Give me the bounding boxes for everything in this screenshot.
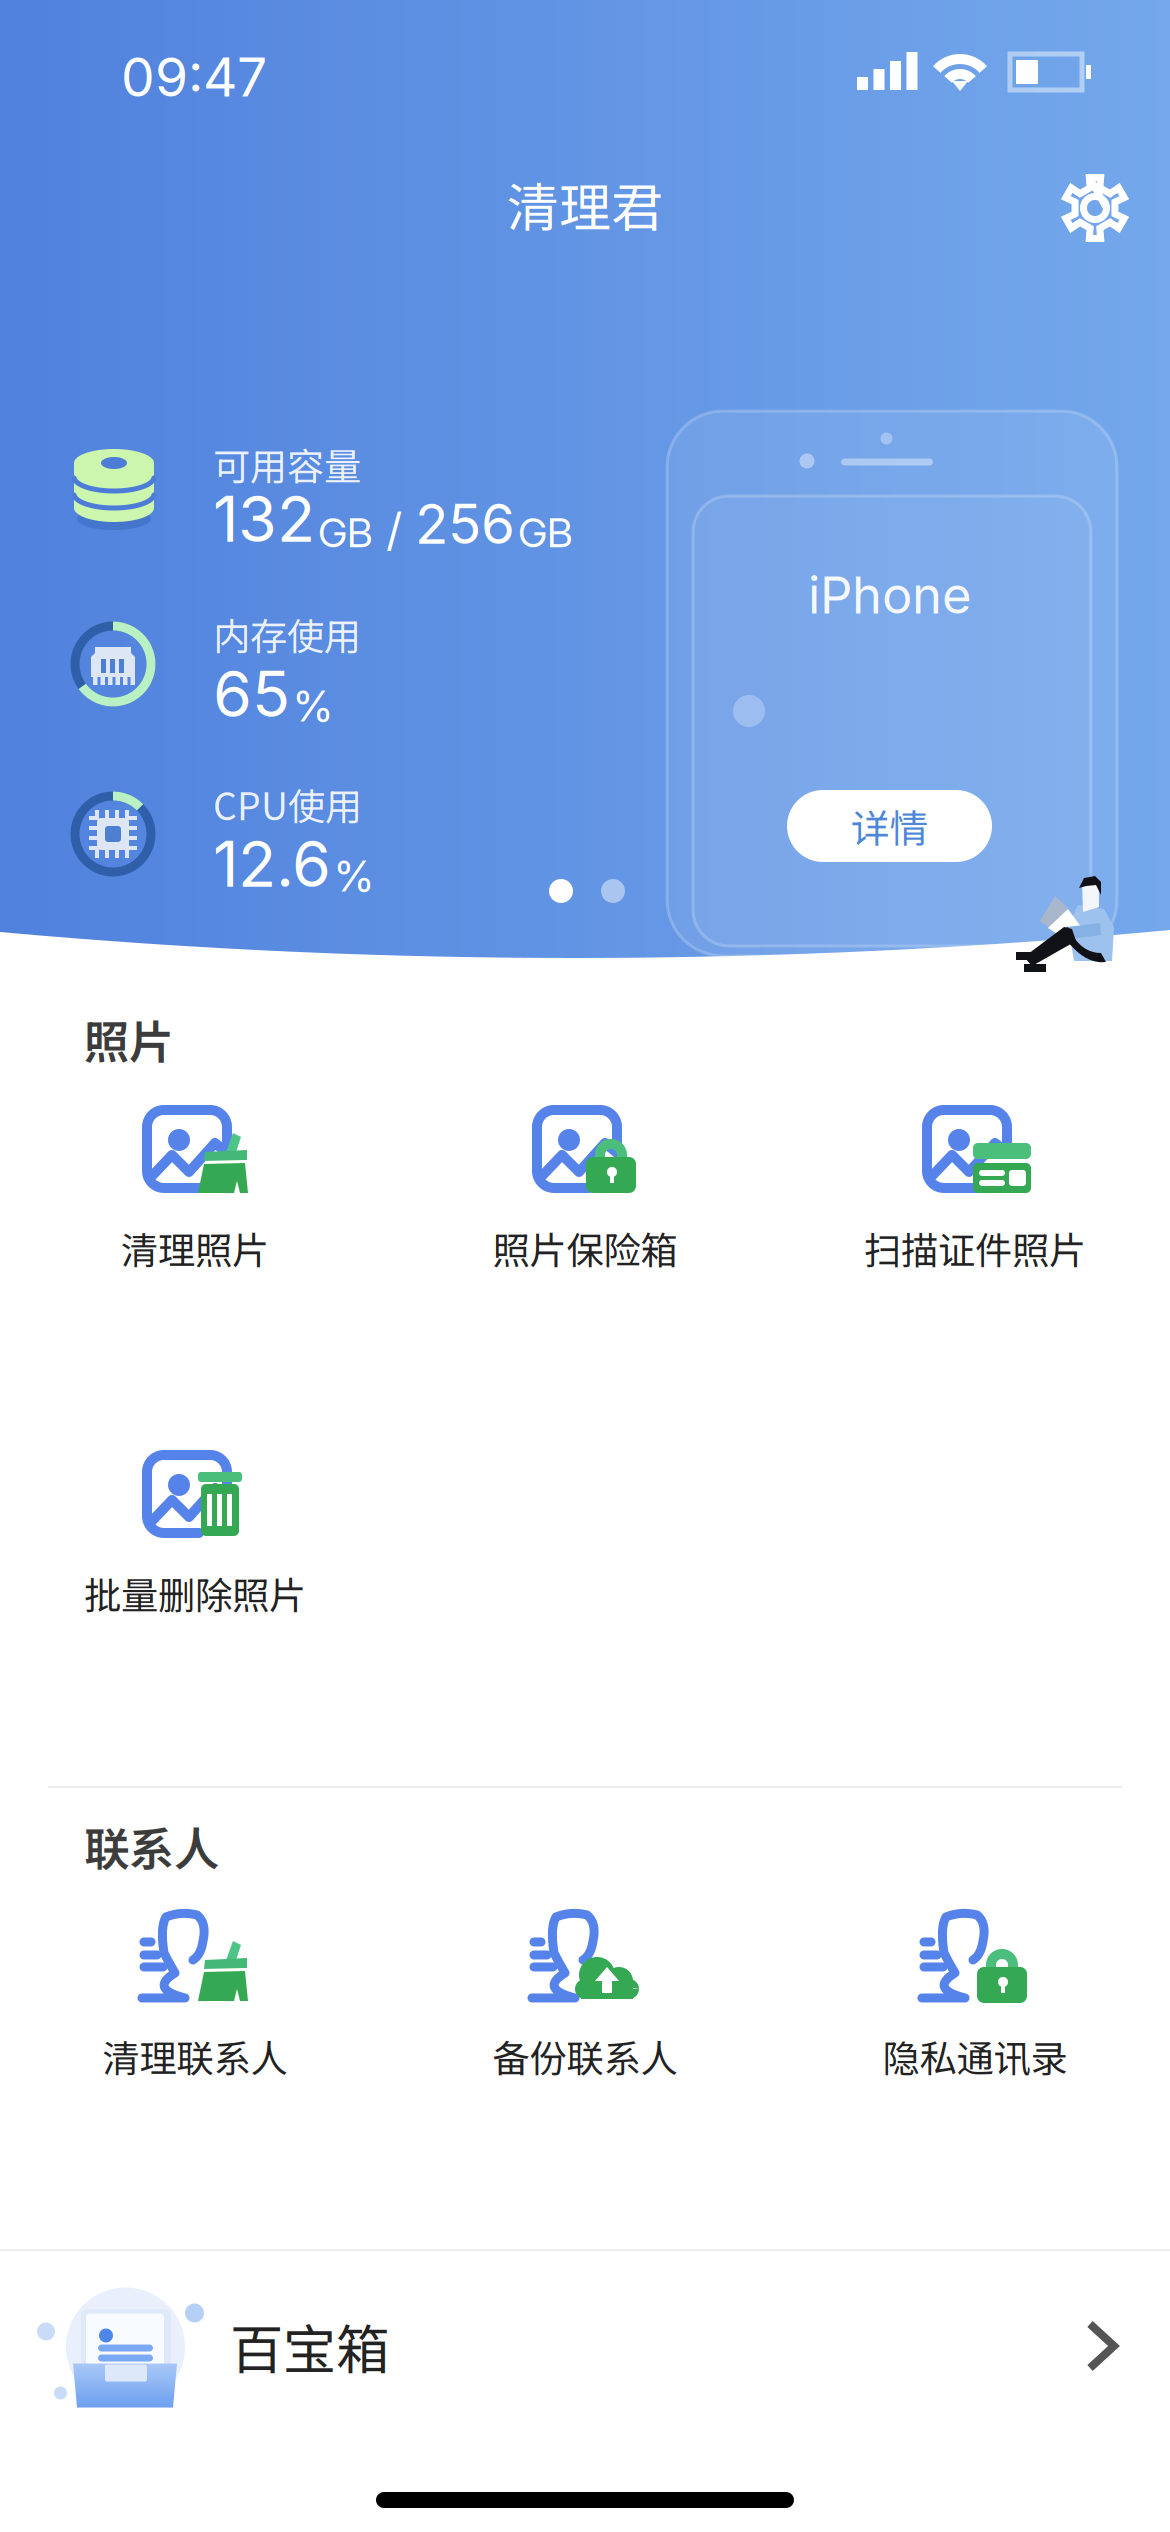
button[interactable]: 备份联系人 — [390, 1879, 780, 2079]
button[interactable]: 照片保险箱 — [390, 1071, 780, 1271]
staticText: 照片 — [84, 1006, 174, 1072]
staticText: 可用容量 — [213, 437, 361, 491]
staticText: GB — [518, 508, 573, 557]
staticText: 备份联系人 — [492, 2029, 677, 2083]
staticText: 内存使用 — [213, 607, 361, 661]
button[interactable]: 隐私通讯录 — [780, 1879, 1170, 2079]
staticText: 百宝箱 — [230, 2307, 389, 2385]
button[interactable]: 清理联系人 — [0, 1879, 390, 2079]
staticText: 256 — [415, 491, 515, 557]
staticText: 详情 — [850, 798, 928, 854]
staticText: 65 — [213, 656, 290, 732]
staticText: 12.6 — [213, 826, 331, 902]
button[interactable]: 清理照片 — [0, 1071, 390, 1271]
button[interactable]: 扫描证件照片 — [780, 1071, 1170, 1271]
staticText: 清理联系人 — [102, 2029, 287, 2083]
staticText: / — [373, 502, 415, 557]
staticText: 清理君 — [507, 166, 663, 242]
staticText: 隐私通讯录 — [882, 2029, 1067, 2083]
staticText: % — [292, 680, 334, 732]
staticText: GB — [318, 508, 373, 557]
staticText: CPU使用 — [213, 777, 362, 831]
staticText: % — [333, 850, 375, 902]
staticText: 批量删除照片 — [84, 1566, 306, 1620]
staticText: 联系人 — [84, 1813, 219, 1879]
staticText: 清理照片 — [121, 1221, 269, 1275]
staticText: iPhone — [808, 564, 972, 626]
button[interactable]: 设置 — [1062, 175, 1128, 241]
button[interactable]: 批量删除照片 — [0, 1416, 390, 1616]
staticText: 132 — [213, 481, 315, 557]
staticText: 照片保险箱 — [492, 1221, 677, 1275]
button[interactable]: 详情 — [787, 790, 992, 862]
button[interactable]: 百宝箱 — [0, 2251, 1170, 2441]
staticText: 扫描证件照片 — [864, 1221, 1086, 1275]
staticText: 09:47 — [121, 45, 267, 109]
